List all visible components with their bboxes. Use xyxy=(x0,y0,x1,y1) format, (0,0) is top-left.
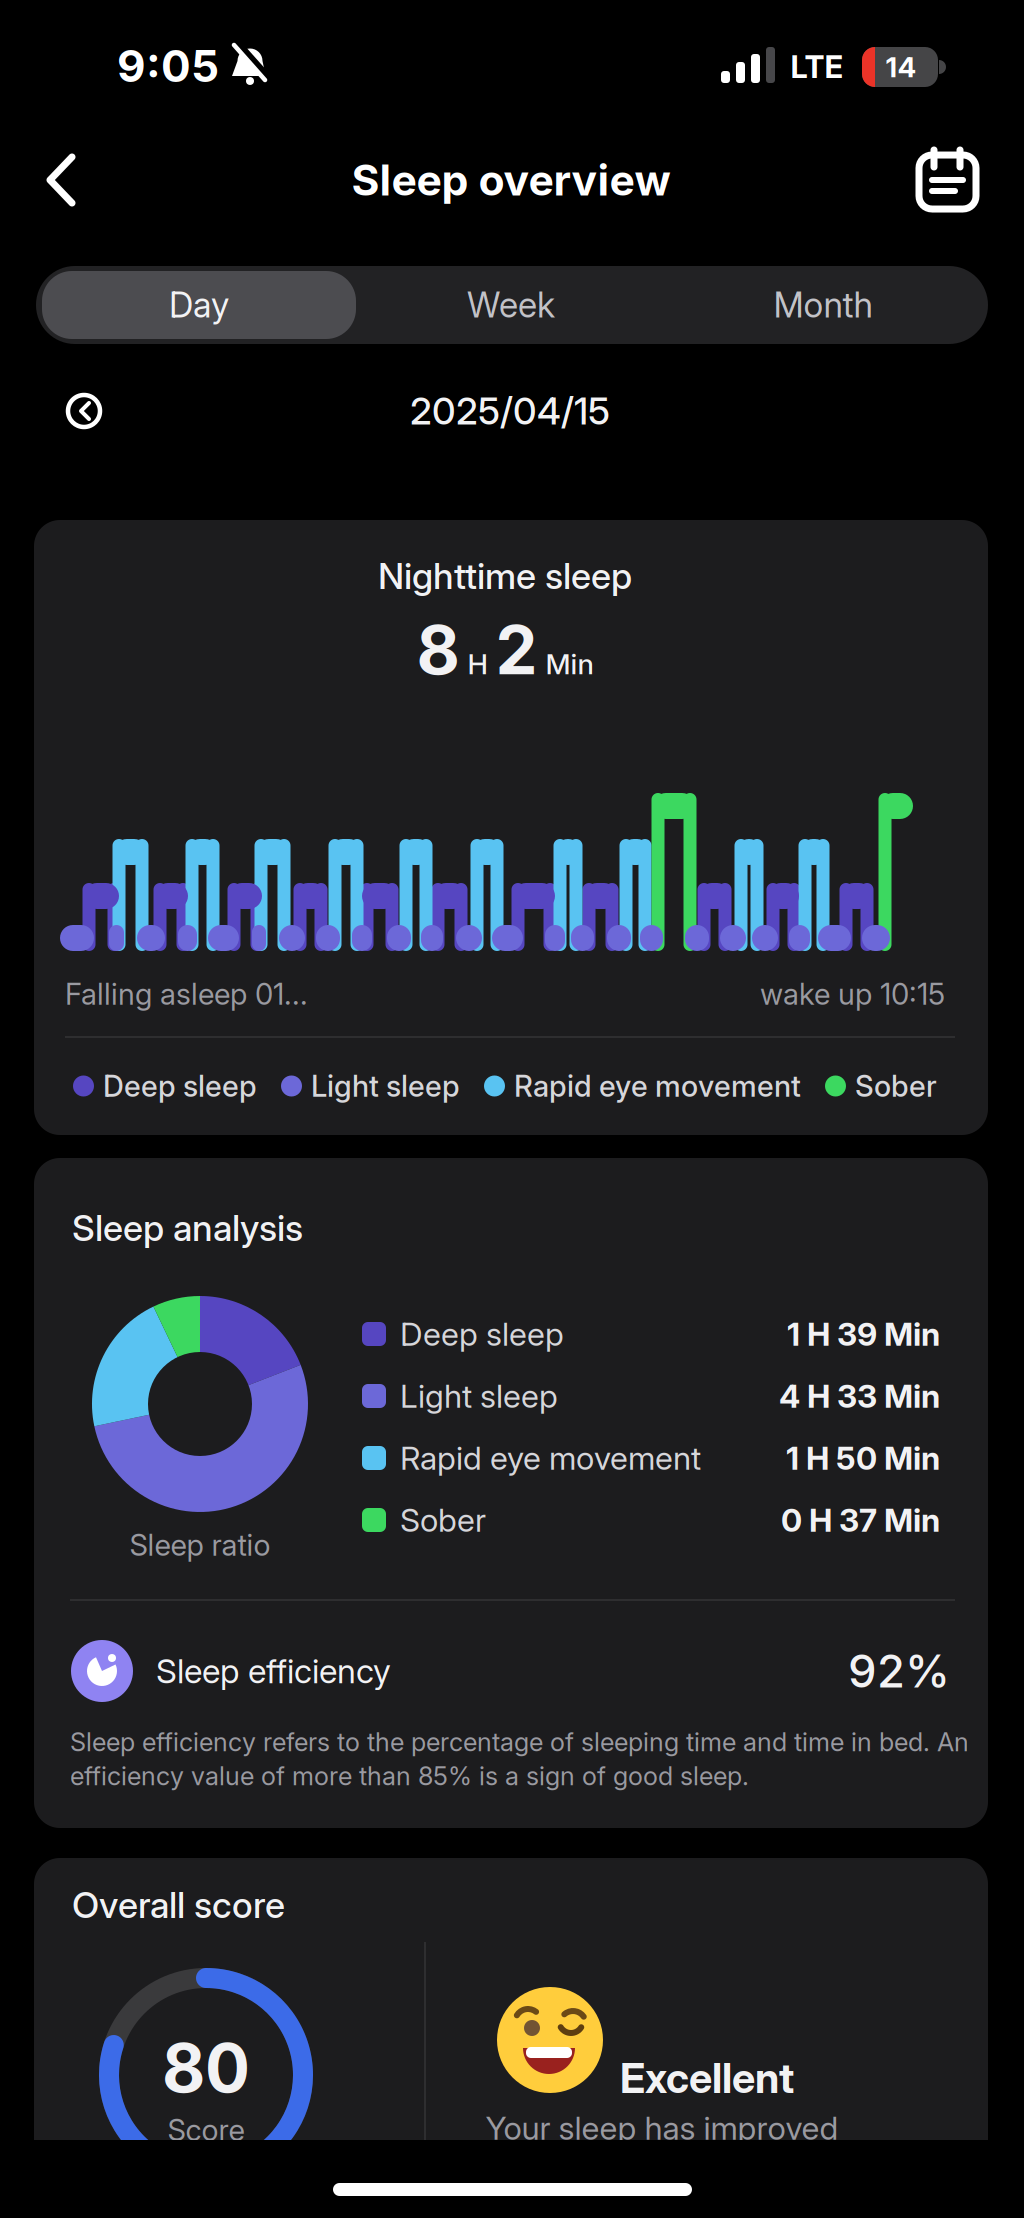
staticText: Excellent xyxy=(620,2054,794,2102)
staticText: 2 xyxy=(495,611,537,689)
staticText: 1 H 39 Min xyxy=(787,1315,940,1353)
staticText: Day xyxy=(169,285,229,325)
button[interactable]: Calendar xyxy=(907,141,987,221)
staticText: wake up 10:15 xyxy=(760,977,945,1011)
staticText: 1 H 50 Min xyxy=(786,1439,940,1477)
staticText: Min xyxy=(545,647,593,680)
button[interactable]: Month xyxy=(668,271,978,339)
staticText: Rapid eye movement xyxy=(514,1069,801,1103)
staticText: Sleep overview xyxy=(351,155,670,205)
staticText: Sleep ratio xyxy=(129,1528,270,1562)
staticText: LTE xyxy=(790,49,843,85)
staticText: Overall score xyxy=(72,1884,285,1926)
staticText: 80 xyxy=(162,2029,250,2107)
staticText: Falling asleep 01... xyxy=(65,977,308,1011)
staticText: Deep sleep xyxy=(103,1069,257,1103)
staticText: Nighttime sleep xyxy=(378,555,632,597)
button[interactable]: Week xyxy=(356,271,666,339)
staticText: 9:05 xyxy=(117,40,219,92)
button[interactable]: Day xyxy=(42,271,356,339)
staticText: Month xyxy=(773,285,872,325)
staticText: Sleep efficiency xyxy=(156,1651,391,1691)
staticText: Sleep analysis xyxy=(72,1207,303,1249)
staticText: H xyxy=(467,647,487,680)
staticText: Light sleep xyxy=(400,1377,558,1415)
staticText: 92% xyxy=(848,1644,950,1698)
staticText: 14 xyxy=(885,50,916,83)
staticText: Deep sleep xyxy=(400,1315,564,1353)
staticText: 8 xyxy=(416,611,459,689)
staticText: 0 H 37 Min xyxy=(781,1501,940,1539)
staticText: Sober xyxy=(400,1501,486,1539)
staticText: Sober xyxy=(855,1069,937,1103)
staticText: Your sleep has improved xyxy=(485,2109,838,2147)
staticText: Light sleep xyxy=(311,1069,460,1103)
staticText: Rapid eye movement xyxy=(400,1439,701,1477)
button[interactable]: Back xyxy=(31,145,91,215)
staticText: Week xyxy=(467,285,555,325)
staticText: efficiency value of more than 85% is a s… xyxy=(70,1761,749,1791)
staticText: 4 H 33 Min xyxy=(779,1377,940,1415)
staticText: 2025/04/15 xyxy=(410,389,610,433)
staticText: Sleep efficiency refers to the percentag… xyxy=(70,1727,969,1757)
staticText: Score xyxy=(167,2113,244,2147)
button[interactable]: Previous day xyxy=(60,387,108,435)
